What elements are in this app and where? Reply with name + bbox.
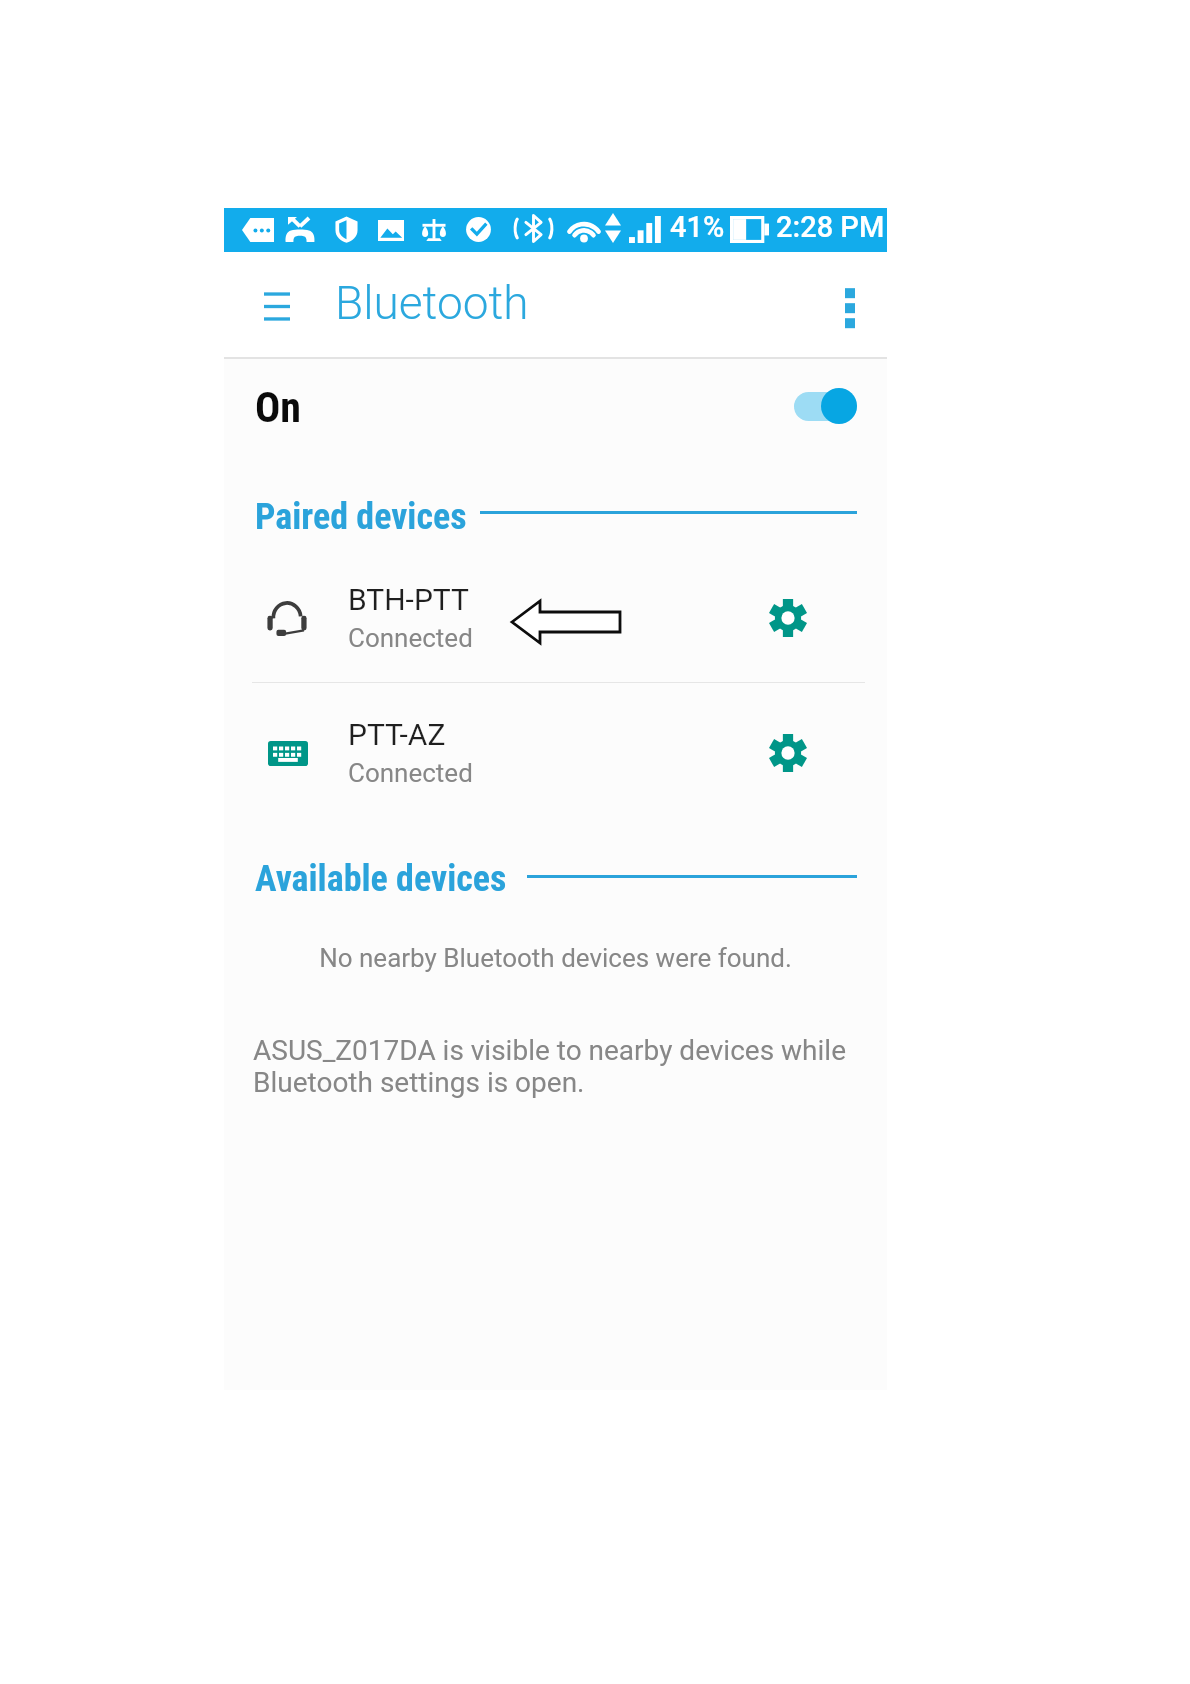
button[interactable]: Menu	[248, 277, 306, 335]
staticText: Paired devices	[255, 496, 467, 538]
staticText: Bluetooth	[335, 276, 529, 330]
staticText: No nearby Bluetooth devices were found.	[224, 943, 887, 973]
staticText: Available devices	[255, 858, 507, 900]
staticText: ASUS_Z017DA is visible to nearby devices…	[253, 1034, 869, 1099]
staticText: BTH-PTT	[348, 582, 469, 617]
staticText: Connected	[348, 623, 473, 653]
button[interactable]: Device settings	[756, 586, 820, 650]
button[interactable]: Device settings	[756, 721, 820, 785]
button[interactable]: On	[224, 359, 887, 455]
staticText: 41%	[670, 210, 725, 244]
button[interactable]: More options	[821, 277, 879, 335]
staticText: Connected	[348, 758, 473, 788]
staticText: PTT-AZ	[348, 717, 446, 752]
staticText: 2:28 PM	[776, 210, 885, 244]
staticText: On	[255, 383, 302, 432]
button[interactable]: BTH-PTT	[224, 559, 887, 677]
button[interactable]: PTT-AZ	[224, 694, 887, 812]
